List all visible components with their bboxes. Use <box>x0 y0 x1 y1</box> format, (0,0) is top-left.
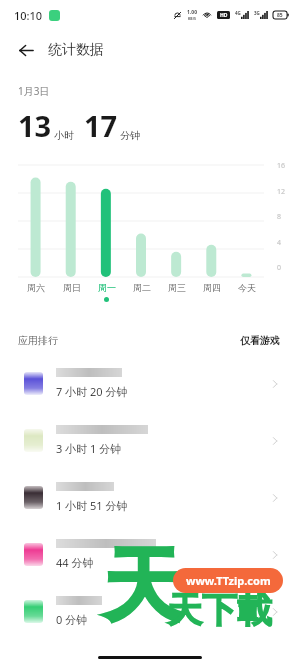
button[interactable]: 44 分钟 <box>0 526 300 583</box>
staticText: 8 <box>277 212 282 222</box>
staticText: 天 <box>103 536 183 637</box>
staticText: 17 <box>84 106 118 145</box>
staticText: 周六 <box>27 282 45 293</box>
button[interactable]: 周一 <box>89 282 124 302</box>
staticText: KB/S <box>188 16 197 21</box>
staticText: 周日 <box>63 282 81 293</box>
staticText: 44 分钟 <box>56 555 94 570</box>
staticText: 1月3日 <box>18 84 50 98</box>
button[interactable]: 今天 <box>229 282 264 302</box>
button[interactable]: 1 小时 51 分钟 <box>0 469 300 526</box>
button[interactable]: 周四 <box>194 282 229 302</box>
staticText: 85 <box>277 12 283 19</box>
other: 查看详情 <box>266 432 284 450</box>
other: 查看详情 <box>266 489 284 507</box>
staticText: 4G <box>235 10 241 16</box>
other: 查看详情 <box>266 603 284 621</box>
staticText: 12 <box>277 187 286 197</box>
staticText: 周一 <box>98 282 116 293</box>
staticText: 13 <box>18 106 52 145</box>
staticText: 周四 <box>203 282 221 293</box>
other: 查看详情 <box>266 375 284 393</box>
staticText: 仅看游戏 <box>240 334 280 347</box>
staticText: 3 小时 1 分钟 <box>56 441 122 456</box>
staticText: 0 分钟 <box>56 612 88 627</box>
staticText: 分钟 <box>120 129 140 142</box>
staticText: 0 <box>277 263 282 273</box>
button[interactable]: 返回 <box>13 37 39 63</box>
button[interactable]: 周二 <box>124 282 159 302</box>
button[interactable]: 周日 <box>54 282 89 302</box>
button[interactable]: 7 小时 20 分钟 <box>0 355 300 412</box>
other: 查看详情 <box>266 546 284 564</box>
staticText: 今天 <box>238 282 256 293</box>
staticText: 周二 <box>133 282 151 293</box>
staticText: 小时 <box>54 129 74 142</box>
staticText: 周三 <box>168 282 186 293</box>
button[interactable]: 仅看游戏 <box>236 330 284 351</box>
staticText: 1.00 <box>187 9 197 16</box>
button[interactable]: 3 小时 1 分钟 <box>0 412 300 469</box>
staticText: 统计数据 <box>48 41 104 59</box>
button[interactable]: 周三 <box>159 282 194 302</box>
staticText: 应用排行 <box>18 334 58 347</box>
staticText: HD <box>220 12 228 19</box>
staticText: 3G <box>254 10 260 16</box>
button[interactable]: 0 分钟 <box>0 583 300 640</box>
staticText: www.TTzip.com <box>186 573 271 588</box>
staticText: 10:10 <box>14 8 43 23</box>
staticText: 16 <box>277 161 286 171</box>
staticText: 天下載 <box>167 588 272 632</box>
button[interactable]: 周六 <box>18 282 54 302</box>
staticText: 1 小时 51 分钟 <box>56 498 128 513</box>
staticText: 7 小时 20 分钟 <box>56 384 128 399</box>
staticText: 4 <box>277 238 282 248</box>
